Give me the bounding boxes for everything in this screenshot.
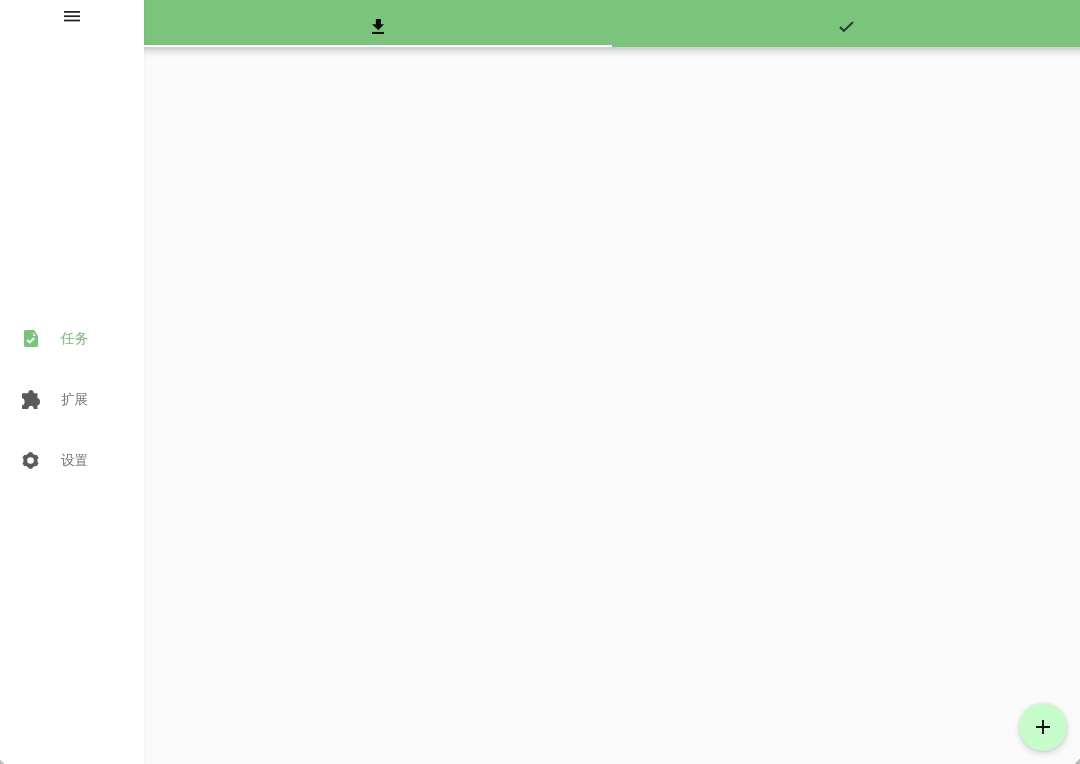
staticText: 任务 (61, 330, 88, 347)
button[interactable]: 扩展 (0, 375, 144, 423)
button[interactable]: Menu (48, 0, 96, 34)
button[interactable]: Downloading (144, 0, 612, 47)
button[interactable]: 任务 (0, 314, 144, 362)
button[interactable]: Completed (612, 0, 1080, 47)
button[interactable]: 设置 (0, 436, 144, 484)
staticText: 设置 (61, 452, 88, 469)
staticText: 扩展 (61, 391, 88, 408)
button[interactable]: Add (1019, 703, 1067, 751)
